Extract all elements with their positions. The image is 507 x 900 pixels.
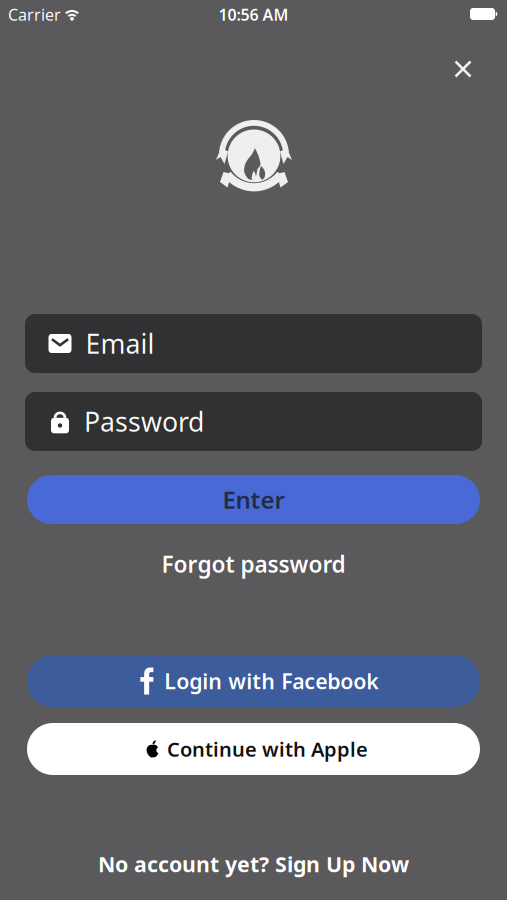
button[interactable]: Email xyxy=(25,314,482,373)
staticText: Forgot password xyxy=(161,549,345,579)
staticText: Carrier xyxy=(8,4,61,25)
button[interactable]: Close xyxy=(441,47,485,91)
staticText: Login with Facebook xyxy=(164,667,379,695)
staticText: No account yet? Sign Up Now xyxy=(98,850,409,878)
button[interactable]: No account yet? Sign Up Now xyxy=(0,849,507,879)
button[interactable]: Continue with Apple xyxy=(27,723,480,775)
button[interactable]: Enter xyxy=(27,475,480,524)
staticText: Continue with Apple xyxy=(167,736,368,762)
button[interactable]: Login with Facebook xyxy=(27,655,480,707)
staticText: Password xyxy=(84,404,204,439)
staticText: Enter xyxy=(222,484,284,515)
button[interactable]: Forgot password xyxy=(0,550,507,578)
staticText: 10:56 AM xyxy=(218,4,288,25)
staticText: Email xyxy=(85,326,154,361)
button[interactable]: Password xyxy=(25,392,482,451)
